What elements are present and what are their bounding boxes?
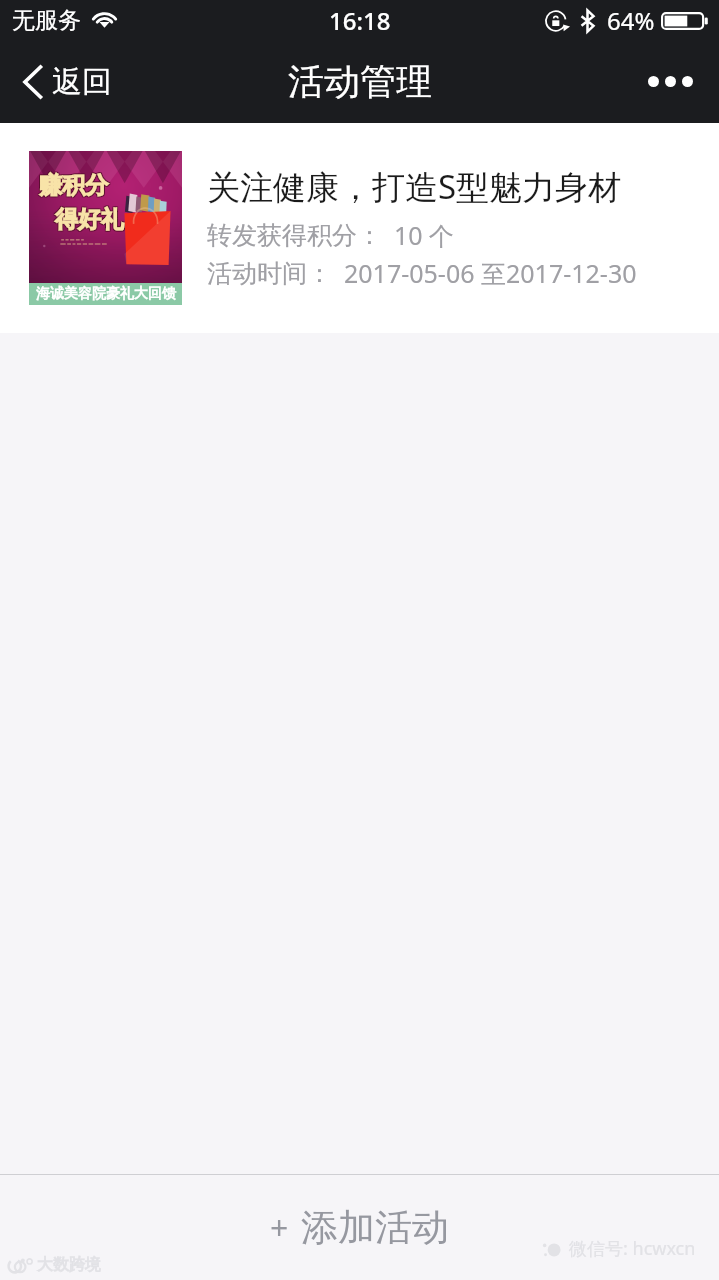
staticText: 得好礼 [55,205,124,234]
staticText: 海诚美容院豪礼大回馈 [36,285,176,303]
button[interactable]: More options [624,50,719,113]
staticText: 赚积分 [38,170,107,199]
staticText: 2017-05-06 至2017-12-30 [344,256,637,290]
staticText: 得好礼 [54,205,123,234]
staticText: 赚积分 [38,171,107,200]
staticText: 赚积分 [39,170,108,199]
button[interactable]: 赚积分 [0,123,719,333]
staticText: 活动管理 [288,59,432,104]
staticText: 赚积分 [38,172,107,201]
staticText: 微信号: hcwxcn [569,1236,696,1261]
staticText: 得好礼 [56,206,125,235]
staticText: 得好礼 [54,204,123,233]
staticText: 活动时间： [207,258,332,289]
staticText: 赚积分 [40,172,109,201]
staticText: 返回 [52,63,112,101]
staticText: 赚积分 [40,171,109,200]
staticText: 添加活动 [301,1204,449,1251]
staticText: 64% [607,4,655,37]
button[interactable]: + [0,1175,719,1280]
staticText: 赚积分 [39,171,108,200]
button[interactable]: 返回 Back [0,53,130,111]
staticText: 16:18 [329,4,391,37]
staticText: 赚积分 [40,170,109,199]
staticText: 关注健康，打造S型魅力身材 [207,164,622,209]
staticText: 赚积分 [39,172,108,201]
staticText: + [270,1206,289,1250]
staticText: 得好礼 [56,205,125,234]
staticText: 得好礼 [55,204,124,233]
staticText: 大数跨境 [37,1255,101,1275]
staticText: 得好礼 [56,204,125,233]
staticText: 无服务 [12,6,81,35]
staticText: 得好礼 [55,206,124,235]
staticText: 转发获得积分： [207,220,382,251]
staticText: 得好礼 [54,206,123,235]
staticText: 10 个 [394,218,455,252]
